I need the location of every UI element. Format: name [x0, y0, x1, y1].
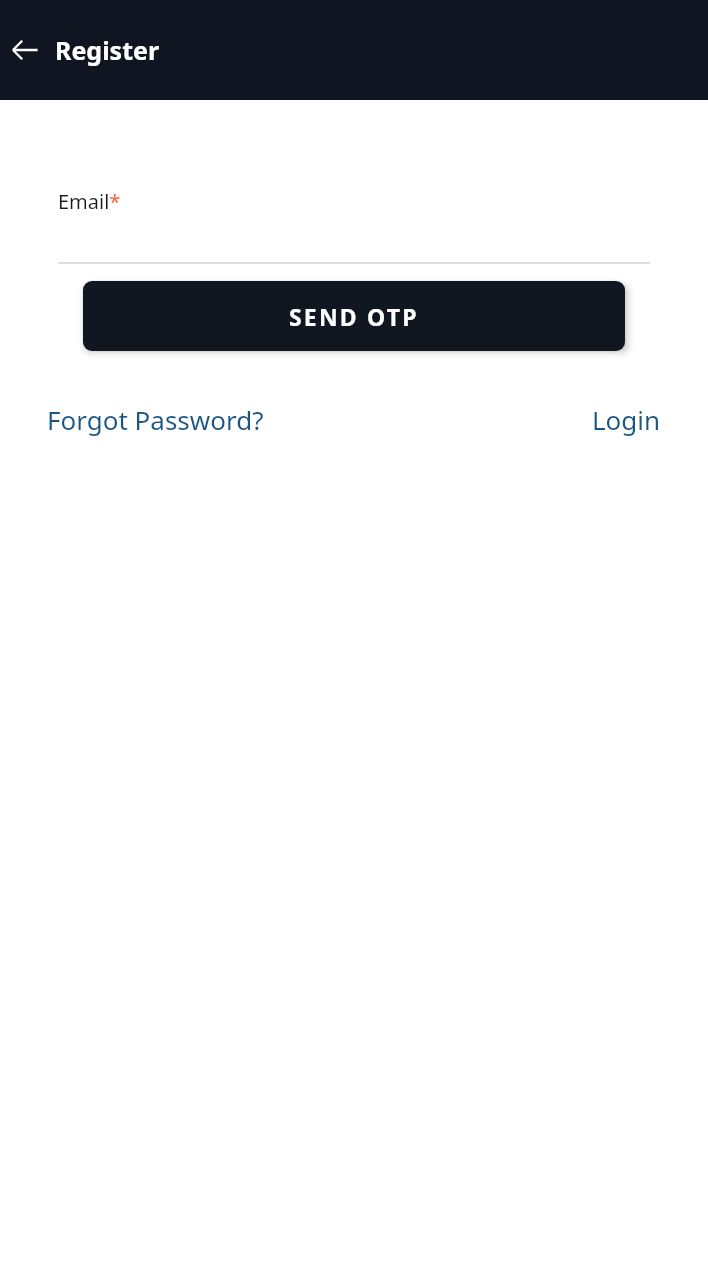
button[interactable]: Email*	[58, 188, 650, 264]
button[interactable]: Login	[592, 402, 661, 437]
staticText: Register	[55, 33, 160, 67]
button[interactable]: Forgot Password?	[47, 402, 264, 437]
button[interactable]: Back	[4, 29, 46, 71]
staticText: SEND OTP	[289, 301, 419, 332]
staticText: Forgot Password?	[47, 402, 264, 437]
staticText: Login	[592, 402, 661, 437]
button[interactable]: SEND OTP	[83, 281, 625, 351]
staticText: Email*	[58, 188, 121, 215]
